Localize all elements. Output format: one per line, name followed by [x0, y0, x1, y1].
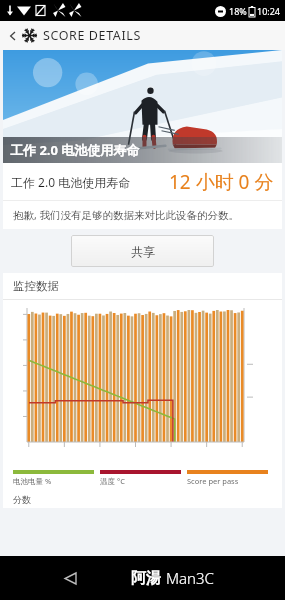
button[interactable]: Back [4, 27, 22, 45]
button[interactable]: 共享 [71, 235, 214, 267]
staticText: 工作 2.0 电池使用寿命 [11, 174, 131, 190]
staticText: 阿湯 [131, 569, 161, 588]
staticText: 12 小时 0 分 [169, 169, 274, 195]
staticText: 工作 2.0 电池使用寿命 [10, 141, 140, 159]
staticText: SCORE DETAILS [43, 27, 141, 44]
staticText: 10:24 [257, 5, 281, 17]
staticText: Man3C [166, 568, 214, 588]
staticText: 18% [229, 5, 247, 17]
button[interactable]: Back [58, 566, 82, 590]
staticText: 共享 [131, 244, 155, 259]
staticText: 电池电量 % [13, 476, 52, 486]
staticText: 温度 °C [100, 476, 125, 486]
staticText: 分数 [13, 494, 31, 505]
staticText: 监控数据 [13, 279, 59, 293]
staticText: Score per pass [187, 476, 239, 486]
staticText: 抱歉, 我们没有足够的数据来对比此设备的分数。 [13, 208, 240, 222]
